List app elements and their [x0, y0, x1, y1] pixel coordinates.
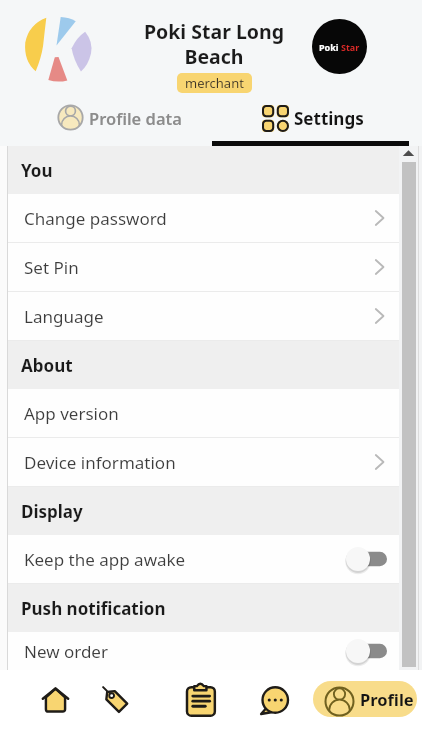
staticText: Display — [21, 500, 83, 523]
button[interactable]: Offers — [101, 682, 131, 718]
staticText: Poki — [319, 41, 339, 53]
button[interactable]: Language — [8, 292, 399, 340]
staticText: Keep the app awake — [24, 548, 186, 571]
button[interactable]: New order — [8, 632, 399, 670]
staticText: merchant — [185, 74, 244, 92]
button[interactable]: App version — [8, 389, 399, 437]
staticText: Push notification — [21, 597, 166, 620]
button[interactable]: Home — [40, 682, 70, 718]
staticText: About — [21, 354, 73, 377]
button[interactable]: Settings — [212, 93, 409, 141]
staticText: Settings — [294, 107, 364, 130]
staticText: Profile — [360, 688, 414, 710]
staticText: Profile data — [89, 107, 182, 129]
staticText: Device information — [24, 451, 176, 474]
button[interactable]: Set Pin — [8, 243, 399, 291]
button[interactable]: Profile data — [16, 93, 212, 141]
staticText: Language — [24, 305, 104, 328]
button[interactable]: Keep the app awake — [8, 535, 399, 583]
button[interactable]: Device information — [8, 438, 399, 486]
staticText: Set Pin — [24, 256, 79, 279]
button[interactable]: Change password — [8, 194, 399, 242]
staticText: Star — [341, 41, 360, 53]
staticText: Change password — [24, 207, 167, 230]
staticText: New order — [24, 640, 108, 663]
staticText: You — [21, 159, 53, 182]
button[interactable]: Profile — [313, 681, 417, 717]
button[interactable]: Orders — [186, 681, 216, 717]
button[interactable]: Messages — [259, 682, 289, 718]
staticText: Poki Star Long Beach — [123, 18, 305, 69]
staticText: App version — [24, 402, 119, 425]
